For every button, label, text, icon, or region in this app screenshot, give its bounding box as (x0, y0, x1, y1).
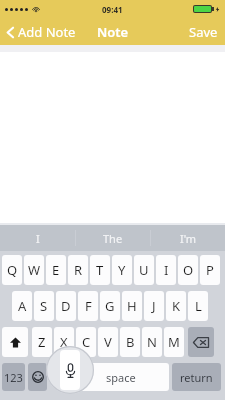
button[interactable]: J (144, 291, 164, 321)
staticText: return (180, 370, 213, 385)
button[interactable]: Dictate (60, 350, 80, 390)
staticText: X (60, 333, 68, 351)
staticText: U (139, 261, 149, 279)
staticText: I (164, 261, 169, 279)
button[interactable]: N (142, 327, 162, 357)
button[interactable]: Add Note (4, 20, 78, 44)
button[interactable]: B (120, 327, 140, 357)
button[interactable]: M (164, 327, 184, 357)
staticText: Q (7, 261, 18, 279)
staticText: Z (38, 333, 46, 351)
staticText: L (195, 297, 202, 315)
button[interactable]: X (54, 327, 74, 357)
button[interactable]: The (76, 225, 150, 251)
button[interactable]: return (172, 363, 221, 391)
button[interactable]: K (166, 291, 186, 321)
staticText: O (183, 261, 194, 279)
button[interactable]: Y (112, 255, 132, 285)
button[interactable]: R (68, 255, 88, 285)
staticText: The (103, 231, 123, 246)
staticText: H (127, 297, 137, 315)
staticText: Add Note (18, 23, 76, 41)
staticText: 09:41 (102, 4, 123, 15)
button[interactable] (2, 327, 28, 357)
staticText: A (18, 297, 27, 315)
staticText: N (147, 333, 157, 351)
button[interactable]: H (122, 291, 142, 321)
staticText: T (96, 261, 104, 279)
button[interactable]: P (200, 255, 220, 285)
button[interactable]: I (156, 255, 176, 285)
staticText: B (126, 333, 135, 351)
staticText: 123 (4, 370, 23, 385)
button[interactable]: O (178, 255, 198, 285)
button[interactable]: S (34, 291, 54, 321)
button[interactable]: E (46, 255, 66, 285)
staticText: K (172, 297, 181, 315)
staticText: I (36, 231, 40, 246)
button[interactable]: V (98, 327, 118, 357)
button[interactable]: G (100, 291, 120, 321)
button[interactable]: F (78, 291, 98, 321)
button[interactable]: Save (182, 19, 225, 45)
button[interactable]: U (134, 255, 154, 285)
staticText: F (85, 297, 92, 315)
button[interactable]: T (90, 255, 110, 285)
staticText: Save (189, 23, 218, 41)
staticText: space (106, 370, 136, 385)
staticText: Note (97, 23, 129, 41)
staticText: R (74, 261, 83, 279)
staticText: Y (118, 261, 126, 279)
button[interactable]: A (12, 291, 32, 321)
staticText: W (28, 261, 41, 279)
button[interactable]: Emoji (28, 363, 47, 391)
button[interactable]: D (56, 291, 76, 321)
staticText: I'm (180, 231, 197, 246)
button[interactable]: L (188, 291, 208, 321)
button[interactable]: C (76, 327, 96, 357)
button[interactable]: 123 (2, 363, 25, 391)
staticText: V (104, 333, 112, 351)
button[interactable]: I (0, 225, 75, 251)
button[interactable]: I'm (151, 225, 225, 251)
button[interactable]: space (72, 363, 169, 391)
button[interactable]: Q (2, 255, 22, 285)
button[interactable]: Backspace (188, 327, 214, 357)
staticText: D (61, 297, 71, 315)
staticText: S (40, 297, 48, 315)
button[interactable]: Z (32, 327, 52, 357)
button[interactable]: W (24, 255, 44, 285)
staticText: J (152, 297, 156, 315)
staticText: C (82, 333, 91, 351)
staticText: G (105, 297, 115, 315)
staticText: E (52, 261, 60, 279)
staticText: P (206, 261, 214, 279)
staticText: M (168, 333, 180, 351)
